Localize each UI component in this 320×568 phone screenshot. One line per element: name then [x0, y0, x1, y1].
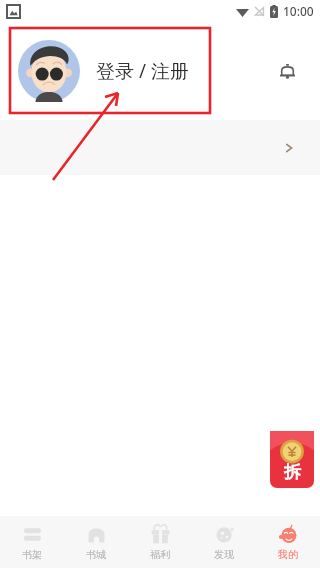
staticText: 拆: [284, 462, 301, 483]
staticText: 10:00: [283, 3, 314, 19]
button[interactable]: 发现: [192, 524, 256, 561]
staticText: 发现: [214, 548, 234, 561]
staticText: 书城: [86, 548, 106, 561]
button[interactable]: 登录 / 注册: [0, 22, 320, 120]
staticText: 登录 / 注册: [96, 58, 189, 84]
staticText: 我的: [278, 548, 298, 561]
staticText: 书架: [22, 548, 42, 561]
button[interactable]: 书架: [0, 524, 64, 561]
button[interactable]: 书城: [64, 524, 128, 561]
button[interactable]: 我的: [256, 524, 320, 561]
button[interactable]: 福利: [128, 524, 192, 561]
staticText: 福利: [150, 548, 170, 561]
button[interactable]: [0, 120, 320, 175]
button[interactable]: 拆红包: [270, 431, 314, 488]
button[interactable]: 通知: [272, 56, 302, 86]
